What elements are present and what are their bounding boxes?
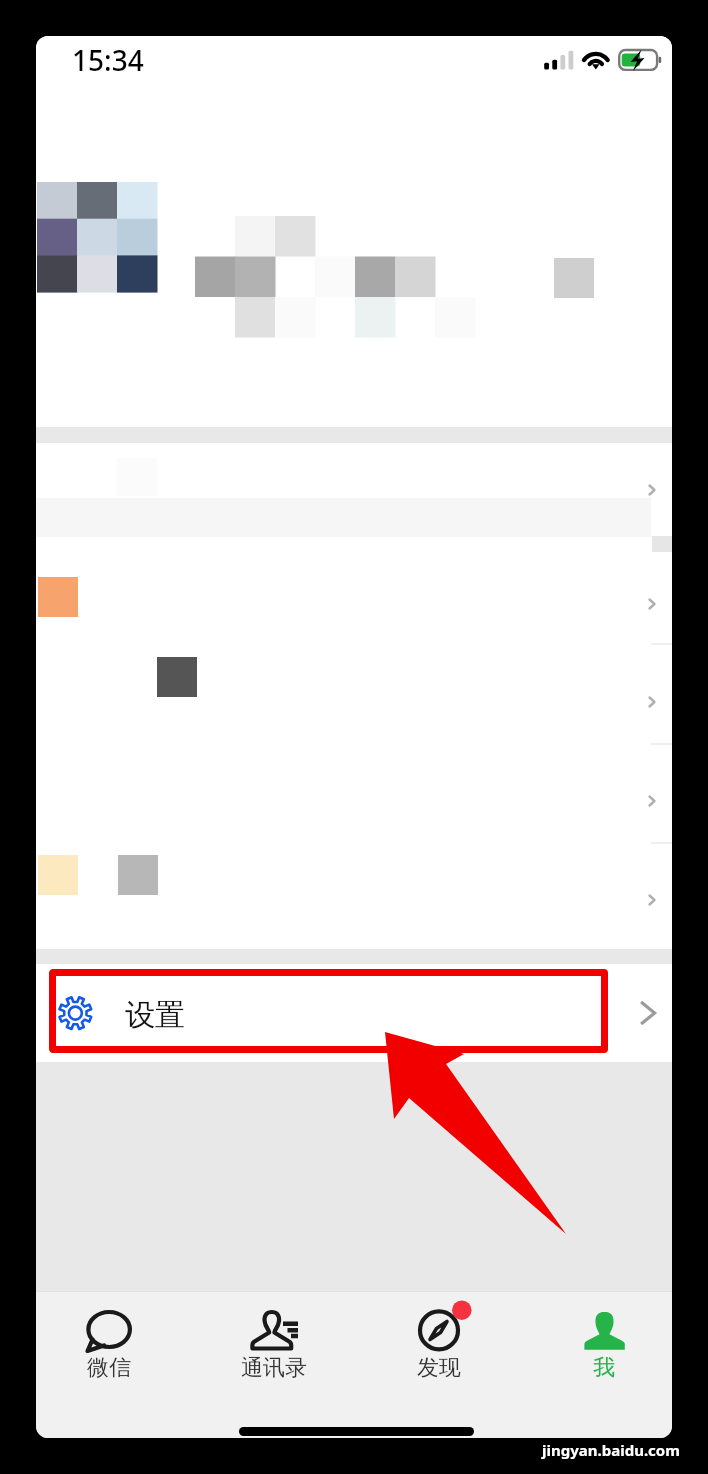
staticText: 设置: [125, 996, 185, 1034]
button[interactable]: [367, 1291, 511, 1411]
button[interactable]: [37, 1291, 181, 1411]
button[interactable]: List item 2: [36, 645, 672, 745]
staticText: 通讯录: [214, 1354, 334, 1382]
button[interactable]: List item 1: [36, 537, 672, 645]
button[interactable]: [532, 1291, 672, 1411]
button[interactable]: [202, 1291, 346, 1411]
staticText: 发现: [379, 1354, 499, 1382]
button[interactable]: List item 4: [36, 844, 672, 949]
button[interactable]: 设置: [36, 964, 672, 1062]
staticText: Baidu 经验: [543, 1430, 672, 1438]
staticText: 我: [544, 1354, 664, 1382]
staticText: jingyan.baidu.com: [542, 1440, 680, 1460]
button[interactable]: Profile: [36, 144, 672, 427]
staticText: 15:34: [72, 41, 144, 79]
staticText: 微信: [49, 1354, 169, 1382]
